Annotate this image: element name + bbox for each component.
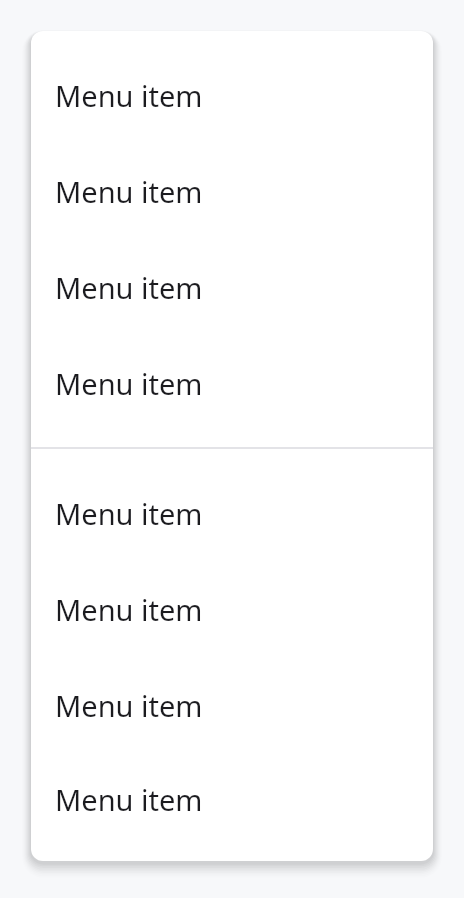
staticText: Menu item xyxy=(55,590,203,629)
button[interactable]: Menu item xyxy=(31,47,433,143)
button[interactable]: Menu item xyxy=(31,335,433,431)
staticText: Menu item xyxy=(55,76,203,115)
button[interactable]: Menu item xyxy=(31,753,433,845)
staticText: Menu item xyxy=(55,494,203,533)
button[interactable]: Menu item xyxy=(31,657,433,753)
button[interactable]: Menu item xyxy=(31,465,433,561)
staticText: Menu item xyxy=(55,780,203,819)
staticText: Menu item xyxy=(55,686,203,725)
staticText: Menu item xyxy=(55,172,203,211)
staticText: Menu item xyxy=(55,364,203,403)
button[interactable]: Menu item xyxy=(31,143,433,239)
button[interactable]: Menu item xyxy=(31,561,433,657)
button[interactable]: Menu item xyxy=(31,239,433,335)
staticText: Menu item xyxy=(55,268,203,307)
